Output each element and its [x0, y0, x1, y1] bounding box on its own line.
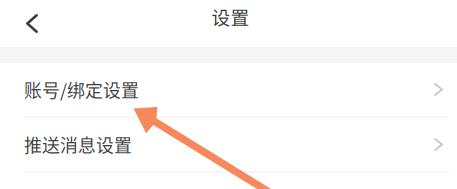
staticText: 账号/绑定设置: [24, 77, 139, 102]
button[interactable]: Back: [0, 0, 52, 47]
staticText: 设置: [211, 3, 249, 30]
staticText: 推送消息设置: [24, 132, 132, 157]
button[interactable]: 账号/绑定设置: [0, 63, 457, 116]
button[interactable]: 推送消息设置: [0, 118, 457, 171]
